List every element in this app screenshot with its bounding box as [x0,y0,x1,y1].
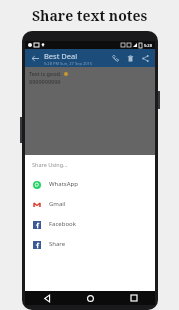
button[interactable]: Gmail [25,194,155,214]
staticText: 9999999999 [29,78,61,85]
staticText: Share text notes [32,6,148,25]
staticText: Gmail [49,200,66,208]
staticText: Facebook [49,220,76,228]
button[interactable]: WhatsApp [25,174,155,194]
button[interactable]: Call [109,52,121,64]
staticText: Best Deal [44,51,78,61]
staticText: Share Using... [32,161,68,168]
staticText: 5:28 [144,43,152,48]
button[interactable]: Share [25,234,155,254]
button[interactable]: Home [69,291,112,305]
staticText: Text is good. [29,70,62,77]
button[interactable]: Back [29,52,41,64]
staticText: Share [49,240,66,248]
staticText: WhatsApp [49,180,78,188]
button[interactable]: Share [139,52,151,64]
button[interactable]: Back [25,291,69,305]
button[interactable]: Facebook [25,214,155,234]
button[interactable]: Recents [112,291,155,305]
staticText: 5:28 PM Sun, 27 Sep 2015 [44,61,93,66]
button[interactable]: Delete [124,52,136,64]
